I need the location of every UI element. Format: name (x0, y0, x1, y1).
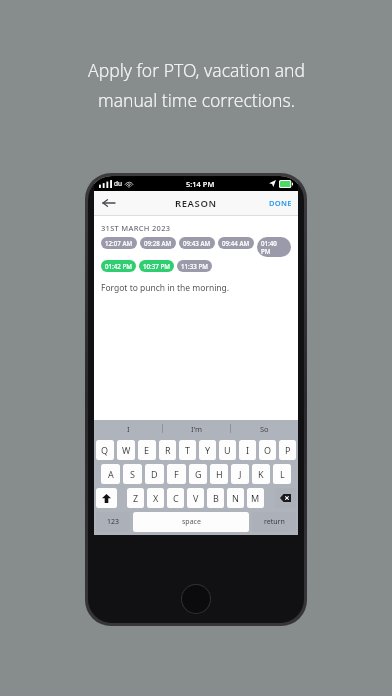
staticText: 01:42 PM (105, 262, 132, 270)
button[interactable]: I'm (163, 420, 230, 437)
button[interactable]: H (210, 464, 228, 484)
staticText: Q (101, 444, 109, 456)
button[interactable]: F (167, 464, 186, 484)
staticText: I (127, 424, 130, 434)
button[interactable]: T (179, 440, 196, 460)
staticText: 31ST MARCH 2023 (101, 223, 171, 233)
staticText: F (174, 468, 179, 480)
staticText: du (114, 179, 123, 188)
button[interactable]: K (252, 464, 270, 484)
button[interactable]: O (259, 440, 276, 460)
staticText: S (130, 468, 135, 480)
button[interactable]: Z (127, 488, 144, 508)
staticText: J (239, 468, 242, 480)
staticText: P (285, 444, 291, 456)
button[interactable]: 09:44 AM (218, 237, 254, 249)
staticText: N (232, 492, 239, 504)
button[interactable]: A (101, 464, 120, 484)
button[interactable]: E (138, 440, 156, 460)
staticText: DONE (269, 198, 292, 208)
button[interactable]: 01:42 PM (101, 260, 136, 272)
staticText: R (165, 444, 171, 456)
staticText: U (224, 444, 231, 456)
staticText: Apply for PTO, vacation and (88, 58, 305, 82)
button[interactable]: L (273, 464, 291, 484)
button[interactable]: 01:40 PM (257, 237, 291, 257)
button[interactable]: 10:37 PM (139, 260, 174, 272)
button[interactable]: 123 (96, 512, 130, 532)
staticText: Forgot to punch in the morning. (101, 282, 230, 294)
button[interactable]: J (231, 464, 249, 484)
button[interactable]: C (167, 488, 184, 508)
staticText: K (258, 468, 264, 480)
staticText: space (182, 517, 201, 527)
button[interactable]: X (147, 488, 164, 508)
staticText: Z (133, 492, 139, 504)
staticText: B (213, 492, 219, 504)
staticText: V (193, 492, 199, 504)
staticText: 09:28 AM (144, 239, 172, 247)
staticText: D (151, 468, 158, 480)
button[interactable]: So (231, 420, 298, 437)
staticText: L (280, 468, 285, 480)
button[interactable]: 12:07 AM (101, 237, 137, 249)
button[interactable]: Back (94, 191, 122, 215)
button[interactable]: V (187, 488, 204, 508)
staticText: 5:14 PM (186, 179, 215, 189)
button[interactable]: Shift (96, 488, 117, 508)
button[interactable]: R (159, 440, 176, 460)
staticText: manual time corrections. (98, 88, 295, 112)
staticText: 11:33 PM (181, 262, 208, 270)
button[interactable]: M (247, 488, 264, 508)
button[interactable]: G (189, 464, 207, 484)
button[interactable]: Y (199, 440, 216, 460)
staticText: W (122, 444, 131, 456)
staticText: 12:07 AM (105, 239, 133, 247)
button[interactable]: P (279, 440, 296, 460)
staticText: X (153, 492, 159, 504)
staticText: I (246, 444, 250, 456)
staticText: G (195, 468, 202, 480)
staticText: A (108, 468, 114, 480)
button[interactable]: 09:28 AM (140, 237, 176, 249)
button[interactable]: W (117, 440, 135, 460)
button[interactable]: DONE (263, 191, 298, 215)
staticText: C (173, 492, 179, 504)
staticText: return (264, 517, 285, 527)
staticText: 09:44 AM (222, 239, 250, 247)
button[interactable]: 09:43 AM (179, 237, 215, 249)
staticText: E (144, 444, 150, 456)
button[interactable]: I (94, 420, 162, 437)
button[interactable]: S (123, 464, 142, 484)
button[interactable]: D (145, 464, 164, 484)
staticText: 09:43 AM (183, 239, 211, 247)
button[interactable]: 11:33 PM (177, 260, 212, 272)
staticText: T (185, 444, 191, 456)
button[interactable]: Backspace (275, 488, 296, 508)
button[interactable]: Q (96, 440, 114, 460)
staticText: So (260, 424, 269, 434)
staticText: Y (205, 444, 211, 456)
button[interactable]: B (207, 488, 224, 508)
staticText: 10:37 PM (143, 262, 170, 270)
staticText: I'm (191, 424, 203, 434)
button[interactable]: space (133, 512, 249, 532)
staticText: M (251, 492, 260, 504)
staticText: O (264, 444, 272, 456)
staticText: 01:40 PM (261, 239, 287, 255)
button[interactable]: U (219, 440, 236, 460)
staticText: 123 (107, 517, 120, 527)
button[interactable]: return (252, 512, 296, 532)
button[interactable]: N (227, 488, 244, 508)
button[interactable]: I (239, 440, 256, 460)
staticText: REASON (175, 197, 217, 210)
staticText: H (216, 468, 223, 480)
